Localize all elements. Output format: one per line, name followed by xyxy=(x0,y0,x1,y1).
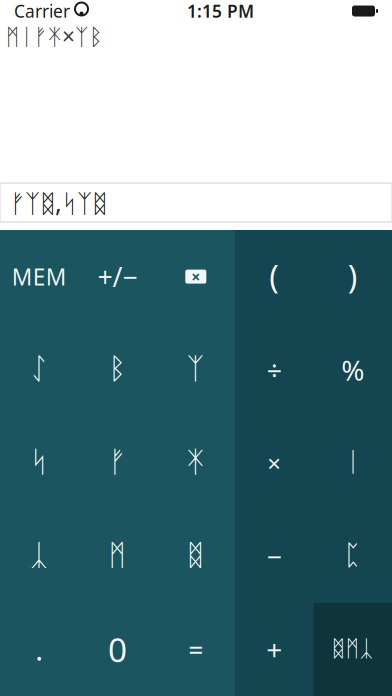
button[interactable]: ᛒ xyxy=(78,323,157,416)
button[interactable]: ᛈ xyxy=(313,510,392,603)
button[interactable]: ᛥ xyxy=(157,510,235,603)
staticText: ᛥᛗᛣ xyxy=(332,638,374,660)
button[interactable]: ᛡ xyxy=(157,416,235,510)
staticText: ᛒ xyxy=(108,355,126,384)
button[interactable]: MEM xyxy=(0,230,78,323)
staticText: ᛣ xyxy=(30,542,48,570)
staticText: . xyxy=(35,630,43,669)
button[interactable]: . xyxy=(0,603,78,696)
staticText: Carrier xyxy=(14,0,70,22)
button[interactable]: = xyxy=(157,603,235,696)
staticText: + xyxy=(266,631,282,668)
staticText: = xyxy=(188,632,203,667)
staticText: 0 xyxy=(108,627,127,672)
staticText: ) xyxy=(348,255,358,298)
button[interactable]: ᚠ xyxy=(78,416,157,510)
staticText: ᛈ xyxy=(344,542,361,570)
staticText: ᛋ xyxy=(30,449,48,477)
staticText: 1:15 PM xyxy=(187,0,254,22)
button[interactable]: ÷ xyxy=(235,323,313,416)
staticText: ᚠ xyxy=(108,449,126,477)
staticText: ᛗᛁᚠᛡ×ᛉᛒ xyxy=(6,21,103,51)
button[interactable]: ᛉ xyxy=(157,323,235,416)
staticText: ᛁ xyxy=(345,450,361,476)
button[interactable]: ᛣ xyxy=(0,510,78,603)
button[interactable]: × xyxy=(235,416,313,510)
staticText: +/− xyxy=(97,259,137,294)
staticText: ᚠᛉᛥ,ᛋᛉᛥ xyxy=(10,186,107,219)
button[interactable]: ᛇ xyxy=(0,323,78,416)
button[interactable]: ᛗ xyxy=(78,510,157,603)
button[interactable]: +/− xyxy=(78,230,157,323)
staticText: ( xyxy=(269,255,279,298)
staticText: ᛇ xyxy=(30,355,48,384)
staticText: ᛡ xyxy=(187,449,205,477)
button[interactable]: − xyxy=(235,510,313,603)
staticText: ᛉ xyxy=(187,355,205,384)
staticText: ᛥ xyxy=(187,542,205,570)
button[interactable]: ) xyxy=(313,230,392,323)
button[interactable]: % xyxy=(313,323,392,416)
button[interactable]: ( xyxy=(235,230,313,323)
button[interactable]: ᛋ xyxy=(0,416,78,510)
staticText: MEM xyxy=(12,261,67,292)
staticText: % xyxy=(341,351,364,388)
staticText: − xyxy=(267,538,282,574)
button[interactable]: + xyxy=(235,603,313,696)
staticText: ᛗ xyxy=(108,542,126,570)
button[interactable]: 0 xyxy=(78,603,157,696)
staticText: × xyxy=(191,266,200,287)
button[interactable]: Enter xyxy=(313,603,392,696)
staticText: ÷ xyxy=(267,352,282,387)
staticText: × xyxy=(267,447,281,479)
button[interactable]: Backspace xyxy=(157,230,235,323)
button[interactable]: ᛁ xyxy=(313,416,392,510)
